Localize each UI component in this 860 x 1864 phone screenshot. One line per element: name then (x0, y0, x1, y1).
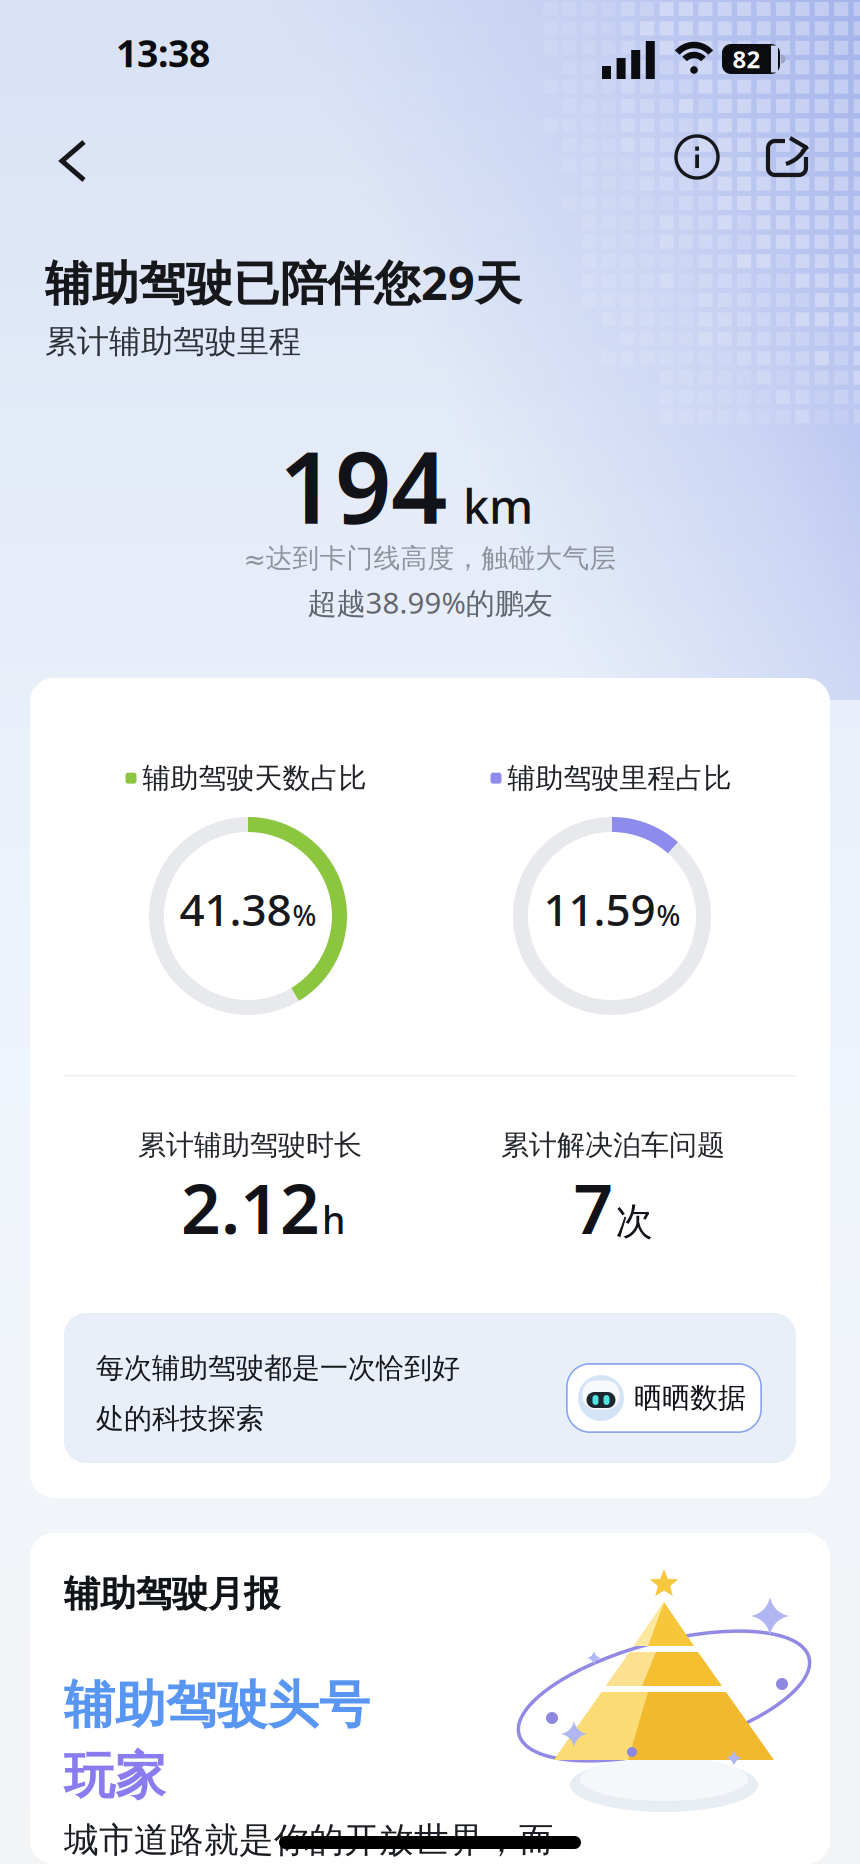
staticText: 辅助驾驶已陪伴您29天 (45, 251, 522, 313)
staticText: h (322, 1195, 345, 1244)
staticText: 7 (573, 1161, 613, 1253)
staticText: 辅助驾驶天数占比 (142, 761, 366, 795)
button[interactable]: Share (755, 126, 818, 186)
staticText: 194 (279, 420, 447, 551)
staticText: 次 (615, 1199, 652, 1244)
staticText: 晒晒数据 (634, 1381, 746, 1415)
staticText: 每次辅助驾驶都是一次恰到好 (96, 1351, 460, 1385)
button[interactable]: Info (666, 126, 728, 188)
staticText: 辅助驾驶里程占比 (507, 761, 731, 795)
staticText: 辅助驾驶月报 (64, 1572, 280, 1616)
staticText: 累计解决泊车问题 (501, 1128, 725, 1162)
staticText: ≈达到卡门线高度，触碰大气层 (243, 542, 616, 575)
staticText: 2.12 (181, 1161, 320, 1253)
staticText: 处的科技探索 (96, 1401, 264, 1436)
staticText: % (292, 897, 316, 934)
staticText: 城市道路就是你的开放世界，而 (64, 1819, 554, 1862)
staticText: 累计辅助驾驶时长 (138, 1128, 362, 1162)
button[interactable]: Back (44, 126, 102, 196)
staticText: km (463, 475, 533, 537)
staticText: 玩家 (64, 1745, 166, 1807)
staticText: 82 (732, 43, 760, 75)
button[interactable]: 晒晒数据 (566, 1363, 762, 1433)
staticText: 累计辅助驾驶里程 (45, 322, 301, 361)
staticText: 41.38 (179, 880, 291, 938)
staticText: 11.59 (543, 880, 655, 938)
staticText: 辅助驾驶头号 (64, 1674, 370, 1736)
staticText: 超越38.99%的鹏友 (307, 583, 552, 622)
staticText: % (656, 897, 680, 934)
staticText: 13:38 (116, 28, 210, 78)
